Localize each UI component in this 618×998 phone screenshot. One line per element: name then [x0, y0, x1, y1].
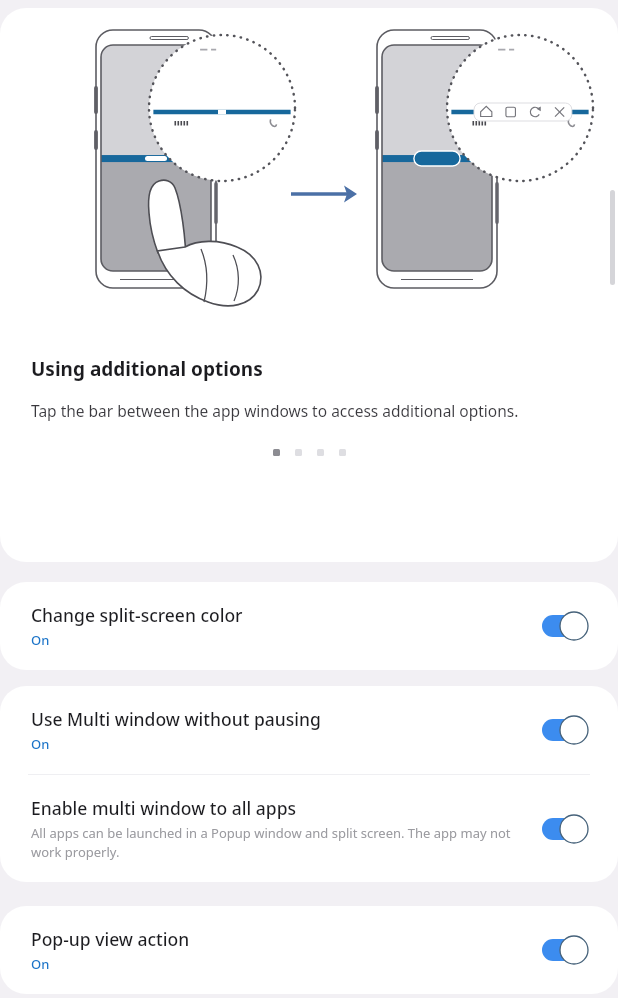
button[interactable]: Toggle, on [542, 809, 598, 849]
staticText: Using additional options [31, 356, 263, 382]
button[interactable]: Toggle, on [542, 710, 598, 750]
button[interactable]: Toggle, on [542, 930, 598, 970]
button[interactable]: Page 2 [295, 449, 302, 456]
button[interactable]: Page 1 [273, 449, 280, 456]
button[interactable]: Page 3 [317, 449, 324, 456]
staticText: Tap the bar between the app windows to a… [31, 400, 519, 421]
staticText: On [31, 735, 50, 753]
staticText: On [31, 631, 50, 649]
staticText: Pop-up view action [31, 927, 190, 951]
button[interactable]: Change split-screen color [0, 582, 618, 670]
staticText: Use Multi window without pausing [31, 707, 321, 731]
button[interactable]: Enable multi window to all apps [0, 775, 618, 882]
staticText: Change split-screen color [31, 603, 243, 627]
button[interactable]: Page 4 [339, 449, 346, 456]
button[interactable]: Use Multi window without pausing [0, 686, 618, 774]
button[interactable]: Pop-up view action [0, 906, 618, 994]
staticText: Enable multi window to all apps [31, 796, 297, 820]
staticText: All apps can be launched in a Popup wind… [31, 824, 526, 861]
button[interactable]: Toggle, on [542, 606, 598, 646]
staticText: On [31, 955, 50, 973]
button[interactable]: Using additional options [0, 8, 618, 562]
